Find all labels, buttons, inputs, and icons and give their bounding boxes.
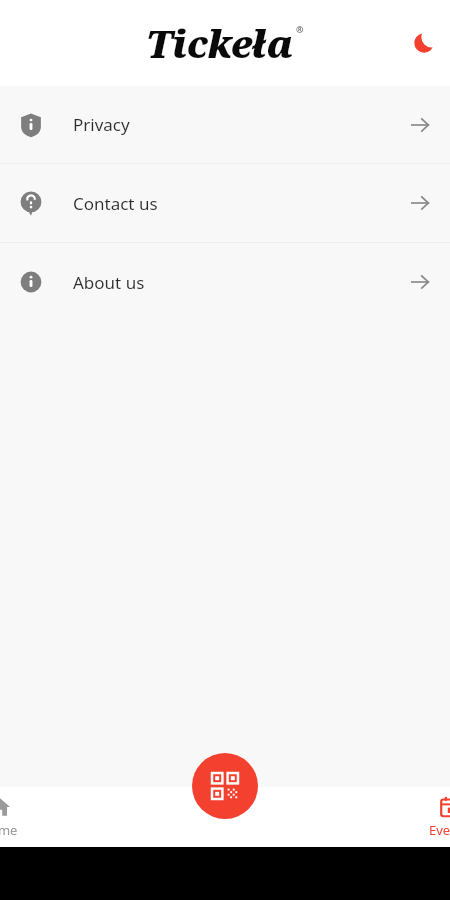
button[interactable]: Toggle dark mode (404, 23, 444, 63)
staticText: Privacy (73, 113, 130, 136)
button[interactable]: home (0, 787, 225, 847)
button[interactable]: Scan QR code (192, 753, 258, 819)
staticText: ® (296, 23, 304, 35)
staticText: Events (429, 821, 450, 839)
staticText: Tickeła (146, 17, 295, 69)
button[interactable]: Privacy (0, 86, 450, 163)
staticText: Contact us (73, 192, 158, 215)
staticText: home (0, 821, 18, 839)
button[interactable]: Events (225, 787, 450, 847)
button[interactable]: Contact us (0, 164, 450, 242)
button[interactable]: About us (0, 243, 450, 321)
staticText: About us (73, 271, 145, 294)
